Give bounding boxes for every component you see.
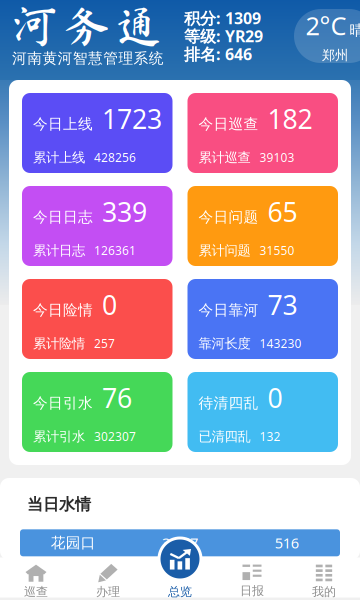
staticText: YR29 bbox=[225, 25, 263, 47]
staticText: 累计险情 bbox=[33, 335, 85, 352]
staticText: 河务通 bbox=[12, 3, 161, 48]
staticText: 等级: bbox=[184, 25, 220, 47]
staticText: 总览 bbox=[168, 584, 192, 599]
button[interactable]: 今日问题 bbox=[187, 186, 338, 266]
staticText: 今日靠河 bbox=[198, 301, 258, 319]
staticText: 126361 bbox=[94, 242, 136, 258]
button[interactable]: 巡查 bbox=[0, 557, 72, 597]
staticText: 339 bbox=[102, 194, 147, 229]
button[interactable]: 日报 bbox=[216, 557, 288, 597]
staticText: 日报 bbox=[240, 583, 264, 598]
button[interactable]: 今日险情 bbox=[22, 279, 172, 359]
staticText: 132 bbox=[259, 428, 280, 444]
staticText: 河南黄河智慧管理系统 bbox=[12, 49, 164, 67]
staticText: 今日上线 bbox=[33, 115, 93, 133]
button[interactable]: 今日上线 bbox=[22, 93, 172, 173]
button[interactable]: 我的 bbox=[288, 557, 360, 597]
staticText: 76 bbox=[102, 380, 132, 415]
staticText: 0 bbox=[102, 287, 117, 322]
staticText: 39103 bbox=[259, 149, 294, 165]
staticText: 排名: bbox=[184, 43, 220, 65]
button[interactable]: 今日日志 bbox=[22, 186, 172, 266]
staticText: 积分: bbox=[184, 7, 220, 29]
button[interactable]: 总览 bbox=[157, 536, 202, 581]
staticText: 花园口 bbox=[51, 534, 96, 552]
button[interactable]: 办理 bbox=[72, 557, 144, 597]
button[interactable]: 总览 bbox=[144, 557, 216, 597]
staticText: 我的 bbox=[312, 584, 336, 599]
staticText: 累计巡查 bbox=[198, 149, 250, 166]
staticText: 2°C bbox=[305, 8, 346, 42]
button[interactable]: 今日靠河 bbox=[187, 279, 338, 359]
staticText: 累计上线 bbox=[33, 149, 85, 166]
button[interactable]: 待清四乱 bbox=[187, 372, 338, 452]
staticText: 今日日志 bbox=[33, 208, 93, 226]
staticText: 65 bbox=[267, 194, 297, 229]
staticText: 今日险情 bbox=[33, 301, 93, 319]
staticText: 今日巡查 bbox=[198, 115, 258, 133]
staticText: 1309 bbox=[225, 7, 261, 29]
staticText: 143230 bbox=[259, 335, 301, 351]
staticText: 182 bbox=[267, 101, 312, 136]
staticText: 当日水情 bbox=[27, 495, 91, 514]
staticText: 已清四乱 bbox=[198, 428, 250, 445]
staticText: 646 bbox=[225, 43, 252, 65]
staticText: 0 bbox=[267, 380, 282, 415]
staticText: 待清四乱 bbox=[198, 394, 258, 412]
staticText: 302307 bbox=[94, 428, 136, 444]
staticText: 516 bbox=[275, 533, 299, 553]
staticText: 累计问题 bbox=[198, 242, 250, 259]
staticText: 今日问题 bbox=[198, 208, 258, 226]
staticText: 巡查 bbox=[24, 584, 48, 599]
staticText: 郑州 bbox=[322, 47, 348, 63]
staticText: 累计日志 bbox=[33, 242, 85, 259]
button[interactable]: 今日巡查 bbox=[187, 93, 338, 173]
staticText: 累计引水 bbox=[33, 428, 85, 445]
staticText: 晴 bbox=[349, 21, 360, 39]
button[interactable]: 今日引水 bbox=[22, 372, 172, 452]
staticText: 428256 bbox=[94, 149, 136, 165]
staticText: 31550 bbox=[259, 242, 294, 258]
staticText: 257 bbox=[94, 335, 115, 351]
staticText: 办理 bbox=[96, 584, 120, 599]
button[interactable]: 2°C bbox=[294, 9, 360, 63]
staticText: 73 bbox=[267, 287, 297, 322]
staticText: 38.47 bbox=[162, 533, 198, 553]
staticText: 今日引水 bbox=[33, 394, 93, 412]
staticText: 靠河长度 bbox=[198, 335, 250, 352]
staticText: 1723 bbox=[102, 101, 162, 136]
